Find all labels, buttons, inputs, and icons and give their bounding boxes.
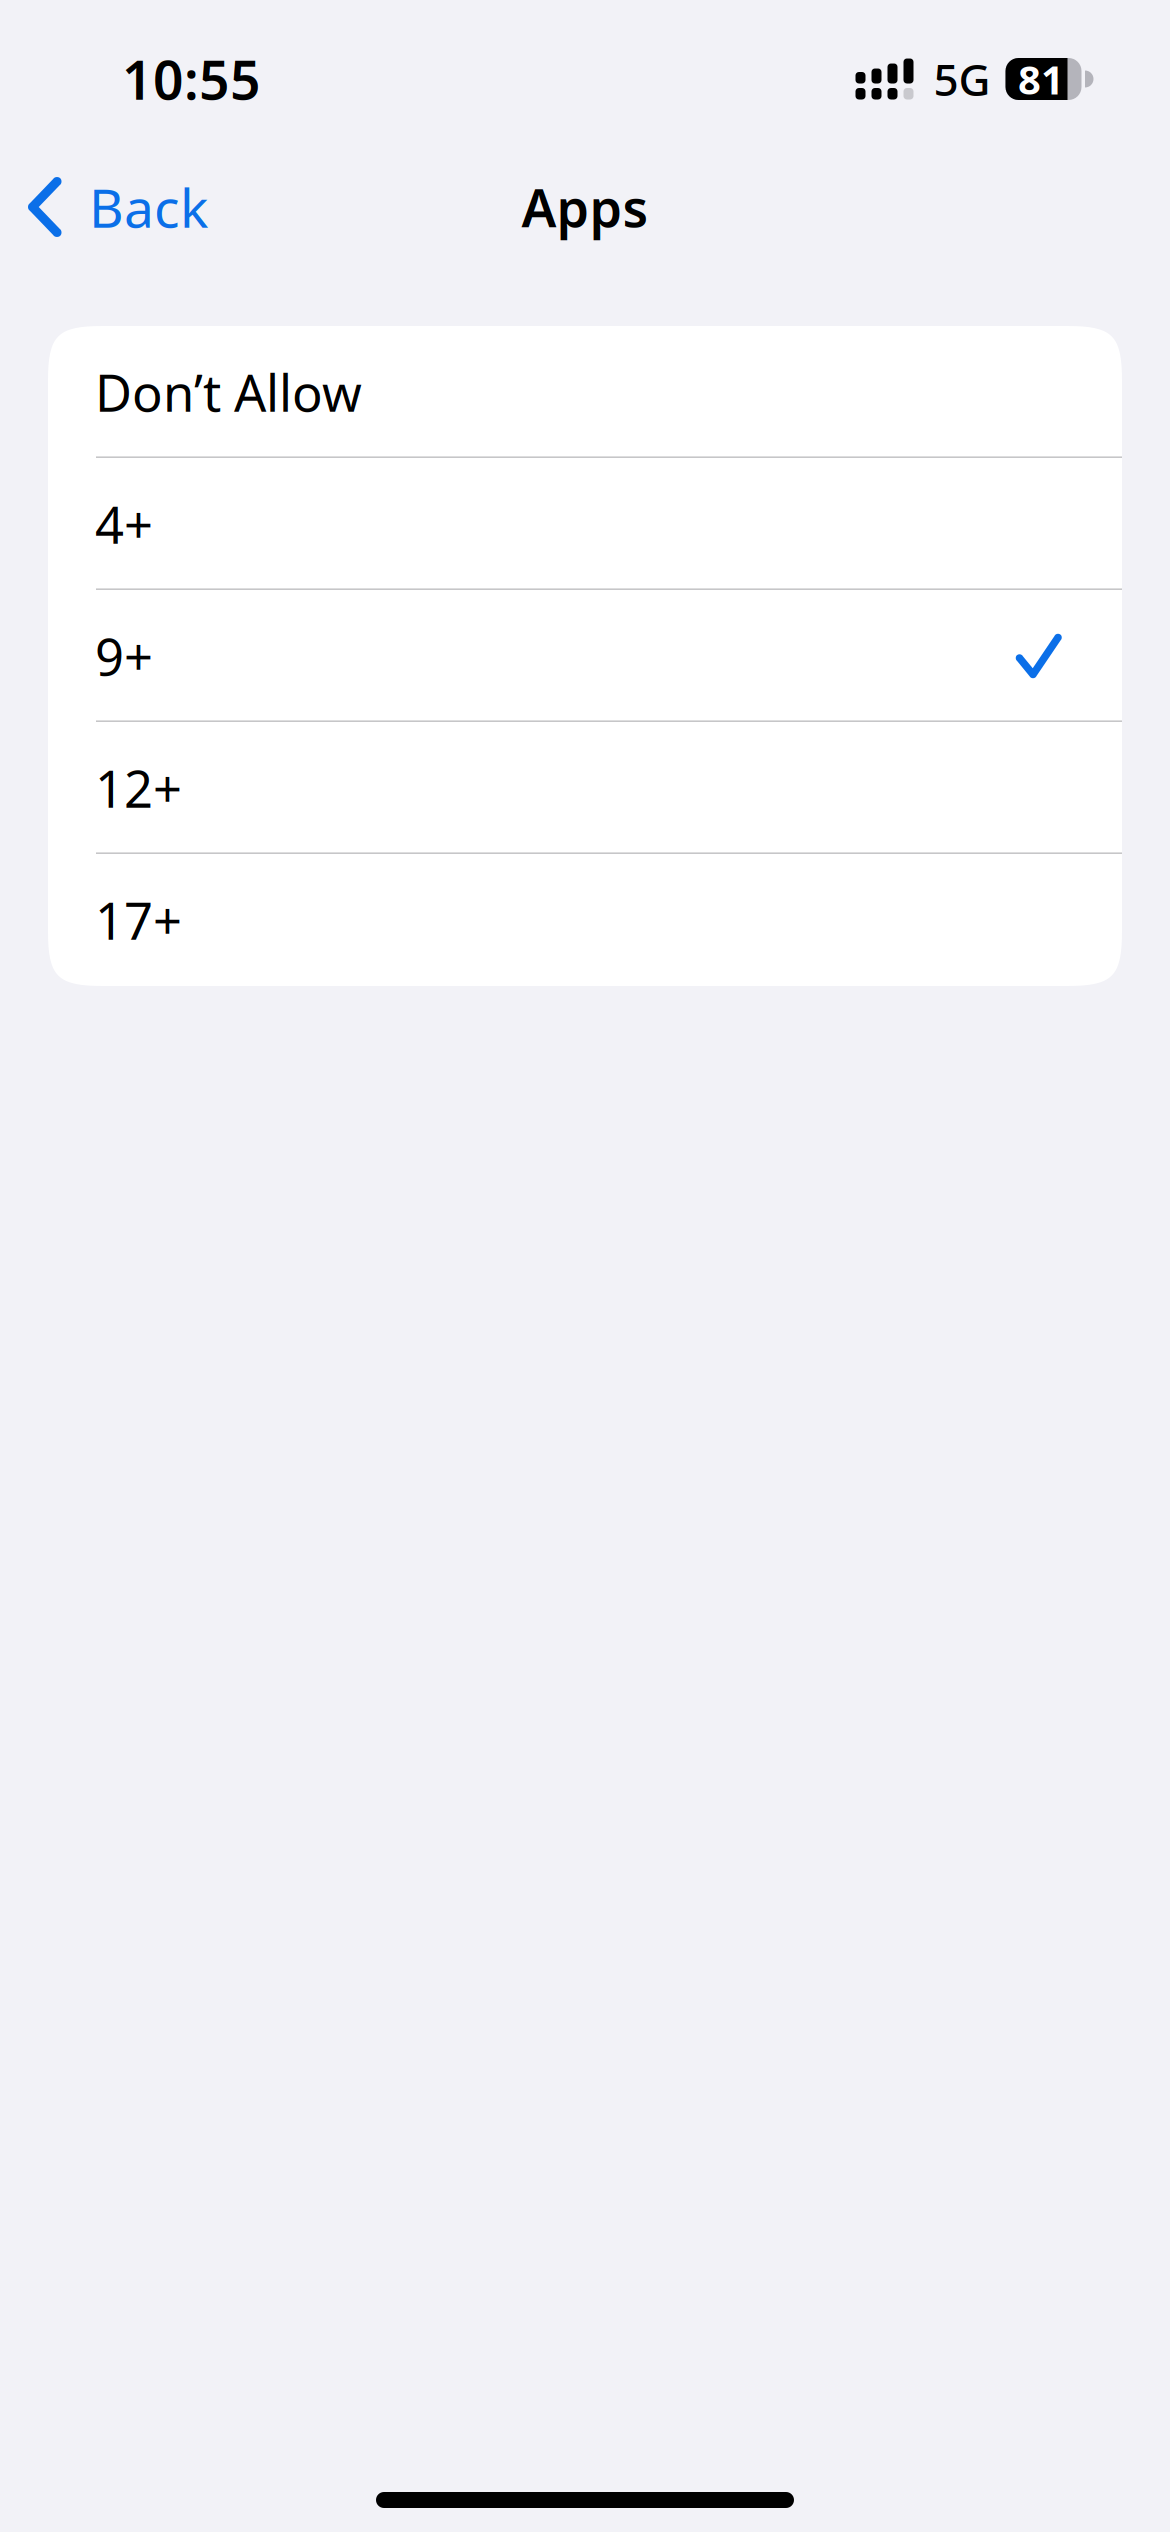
button[interactable]: 17+ [48, 854, 1122, 986]
button[interactable]: 12+ [48, 722, 1122, 854]
staticText: 81 [1018, 52, 1064, 105]
staticText: 5G [933, 50, 990, 108]
staticText: Don’t Allow [95, 358, 362, 426]
staticText: 9+ [95, 622, 153, 690]
staticText: 10:55 [122, 44, 261, 114]
staticText: 17+ [95, 886, 182, 954]
staticText: 4+ [95, 490, 153, 558]
staticText: 12+ [95, 754, 182, 822]
staticText: Apps [521, 172, 648, 242]
button[interactable]: 9+ [48, 590, 1122, 722]
staticText: Back [89, 172, 208, 242]
button[interactable]: Back [0, 141, 234, 273]
button[interactable]: Don’t Allow [48, 326, 1122, 458]
button[interactable]: 4+ [48, 458, 1122, 590]
